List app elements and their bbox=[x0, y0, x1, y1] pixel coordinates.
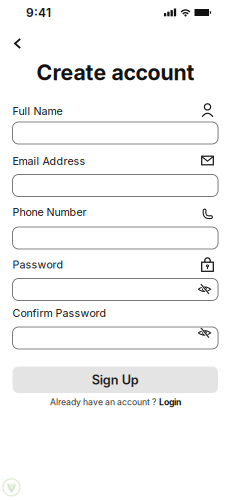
staticText: Confirm Password bbox=[12, 307, 106, 320]
button[interactable]: Email Address bbox=[12, 174, 218, 196]
button[interactable]: Password bbox=[12, 278, 218, 300]
button[interactable]: Confirm Password bbox=[12, 327, 218, 349]
staticText: Create account bbox=[36, 60, 194, 85]
button[interactable]: Back bbox=[8, 32, 28, 55]
staticText: Email Address bbox=[12, 155, 85, 168]
staticText: 9:41 bbox=[26, 5, 51, 20]
staticText: Login bbox=[159, 397, 181, 407]
staticText: Full Name bbox=[12, 104, 62, 117]
staticText: Sign Up bbox=[92, 372, 139, 387]
staticText: Already have an account ? bbox=[50, 397, 156, 407]
button[interactable]: Full Name bbox=[12, 122, 218, 144]
staticText: Phone Number bbox=[12, 206, 86, 219]
staticText: Password bbox=[12, 258, 63, 271]
button[interactable]: Show password bbox=[194, 324, 214, 342]
button[interactable]: Sign Up bbox=[12, 367, 218, 393]
button[interactable]: Show password bbox=[194, 280, 214, 298]
button[interactable]: Phone Number bbox=[12, 227, 218, 249]
button[interactable]: Login bbox=[159, 397, 181, 407]
